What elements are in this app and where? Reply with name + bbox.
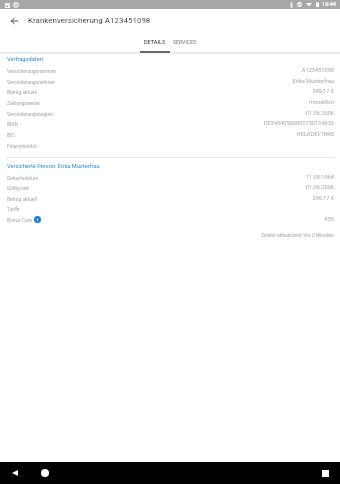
button[interactable]: Info about Bonus Care	[34, 216, 41, 223]
staticText: 855	[324, 216, 334, 223]
staticText: 10:44	[322, 1, 336, 8]
staticText: Bonus Care	[7, 217, 33, 223]
staticText: Zahlungsweise	[7, 100, 40, 106]
staticText: Betrag aktuell	[7, 196, 37, 202]
staticText: Vertragsdaten	[7, 56, 43, 63]
staticText: Betrag aktuell	[7, 89, 37, 95]
staticText: DETAILS	[144, 39, 166, 45]
staticText: Geburtsdatum	[7, 175, 39, 181]
staticText: monatlich	[309, 99, 334, 106]
staticText: 249,17 €	[312, 88, 334, 95]
staticText: Versicherte Person: Erika Musterfrau	[7, 163, 100, 170]
staticText: A123451098	[301, 67, 334, 74]
staticText: IBAN	[7, 121, 19, 127]
staticText: Versicherungsnummer	[7, 68, 57, 74]
button[interactable]: Back	[2, 9, 26, 33]
staticText: DE34840500001750114832	[263, 120, 334, 127]
staticText: BIC	[7, 132, 15, 138]
button[interactable]: DETAILS	[140, 34, 170, 49]
staticText: Krankenversicherung A123451098	[28, 16, 151, 25]
staticText: HELADEF1RRS	[296, 131, 334, 138]
staticText: Erika Musterfrau	[292, 78, 334, 85]
staticText: Gültig seit	[7, 185, 29, 191]
button[interactable]: Back	[4, 462, 26, 484]
button[interactable]: Recent apps	[314, 462, 336, 484]
staticText: 01.06.2006	[305, 110, 334, 117]
button[interactable]: SERVICES	[170, 34, 200, 49]
staticText: Finanzinstitut	[7, 143, 37, 149]
staticText: 01.06.2006	[305, 184, 334, 191]
staticText: Tarife	[7, 206, 20, 212]
staticText: Zuletzt aktualisiert: Vor 0 Minuten	[261, 233, 334, 239]
button[interactable]: Home	[34, 462, 56, 484]
staticText: SERVICES	[173, 39, 197, 45]
staticText: 11.08.1964	[305, 174, 334, 181]
staticText: Versicherungsbeginn	[7, 111, 53, 117]
staticText: Versicherungsnehmer	[7, 79, 55, 85]
staticText: 249,17 €	[312, 195, 334, 202]
